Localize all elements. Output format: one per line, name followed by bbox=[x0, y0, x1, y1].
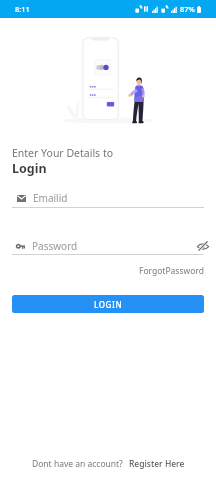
staticText: Emailid bbox=[33, 191, 68, 205]
button[interactable]: Register Here bbox=[129, 458, 185, 470]
staticText: Dont have an account? bbox=[32, 458, 123, 470]
staticText: Password bbox=[32, 239, 78, 253]
staticText: 87% bbox=[180, 4, 195, 14]
staticText: Enter Your Details to bbox=[12, 146, 114, 160]
staticText: Login bbox=[12, 160, 47, 177]
button[interactable]: ForgotPassword bbox=[139, 265, 204, 277]
button[interactable]: Password bbox=[12, 239, 190, 253]
button[interactable]: Emailid bbox=[12, 191, 204, 208]
staticText: LOGIN bbox=[94, 299, 123, 310]
button[interactable]: Show password bbox=[196, 239, 210, 253]
button[interactable]: LOGIN bbox=[12, 295, 204, 313]
staticText: 8:11 bbox=[15, 4, 30, 14]
